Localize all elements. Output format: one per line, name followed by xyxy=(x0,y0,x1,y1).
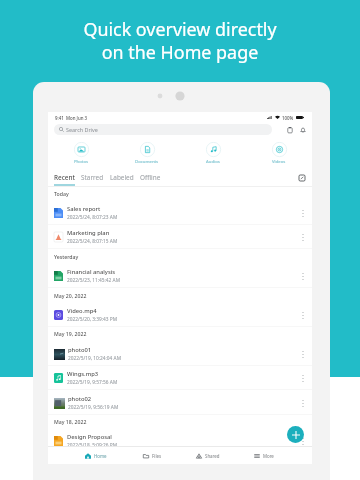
button[interactable]: Videos xyxy=(246,136,312,164)
staticText: Marketing plan xyxy=(67,229,110,237)
button[interactable]: Photos xyxy=(48,136,114,164)
staticText: 2022/5/19, 9:57:56 AM xyxy=(67,379,118,386)
staticText: Files xyxy=(152,453,162,459)
staticText: Yesterday xyxy=(54,253,79,260)
button[interactable]: Home xyxy=(68,447,124,464)
button[interactable]: Sales report xyxy=(48,201,312,225)
staticText: Photos xyxy=(74,158,89,164)
staticText: Wings.mp3 xyxy=(67,370,99,378)
staticText: Labeled xyxy=(110,173,134,182)
button[interactable]: More options xyxy=(297,270,309,282)
button[interactable]: Notifications xyxy=(296,123,309,136)
staticText: Quick overview directly on the Home page xyxy=(83,17,277,64)
button[interactable]: More options xyxy=(297,348,309,360)
button[interactable]: Select xyxy=(296,172,307,183)
staticText: Videos xyxy=(272,158,286,164)
staticText: 100% xyxy=(282,115,294,121)
button[interactable]: Offline xyxy=(137,173,164,186)
staticText: 2022/5/23, 11:45:42 AM xyxy=(67,277,121,284)
button[interactable]: More options xyxy=(297,435,309,447)
button[interactable]: Video.mp4 xyxy=(48,303,312,327)
staticText: May 20, 2022 xyxy=(54,292,87,299)
button[interactable]: Files xyxy=(124,447,180,464)
staticText: Documents xyxy=(135,158,159,164)
staticText: 2022/5/24, 8:07:15 AM xyxy=(67,238,118,245)
button[interactable]: Scan document xyxy=(283,123,296,136)
button[interactable]: More options xyxy=(297,231,309,243)
button[interactable]: Starred xyxy=(78,173,107,186)
button[interactable]: photo02 xyxy=(48,391,312,415)
staticText: 2022/5/24, 8:07:23 AM xyxy=(67,214,118,221)
staticText: 2022/5/20, 3:39:43 PM xyxy=(67,316,118,323)
button[interactable]: Design Proposal xyxy=(48,429,312,453)
staticText: Design Proposal xyxy=(67,433,112,441)
staticText: Shared xyxy=(205,453,220,459)
staticText: 2022/5/19, 10:24:04 AM xyxy=(68,355,122,362)
button[interactable]: More xyxy=(236,447,292,464)
staticText: Starred xyxy=(81,173,104,182)
button[interactable]: Documents xyxy=(114,136,180,164)
staticText: May 19, 2022 xyxy=(54,330,87,337)
button[interactable]: photo01 xyxy=(48,342,312,366)
staticText: Recent xyxy=(54,173,75,182)
staticText: photo01 xyxy=(68,346,92,354)
button[interactable]: Recent xyxy=(51,173,78,186)
staticText: 2022/5/19, 9:56:19 AM xyxy=(68,404,119,411)
staticText: 9:41 Mon Jun 3 xyxy=(55,115,88,121)
staticText: Audios xyxy=(206,158,220,164)
button[interactable]: Marketing plan xyxy=(48,225,312,249)
staticText: photo02 xyxy=(68,395,92,403)
button[interactable]: Financial analysis xyxy=(48,264,312,288)
button[interactable]: Create new xyxy=(287,426,304,443)
staticText: Today xyxy=(54,190,69,197)
button[interactable]: Audios xyxy=(180,136,246,164)
button[interactable]: More options xyxy=(297,372,309,384)
staticText: Financial analysis xyxy=(67,268,116,276)
button[interactable]: Wings.mp3 xyxy=(48,366,312,390)
staticText: More xyxy=(263,453,274,459)
staticText: Search Drive xyxy=(66,126,98,133)
staticText: Home xyxy=(94,453,107,459)
button[interactable]: More options xyxy=(297,309,309,321)
button[interactable]: Labeled xyxy=(107,173,137,186)
staticText: Video.mp4 xyxy=(67,307,97,315)
staticText: Offline xyxy=(140,173,161,182)
button[interactable]: Shared xyxy=(180,447,236,464)
staticText: May 18, 2022 xyxy=(54,418,87,425)
staticText: Sales report xyxy=(67,205,101,213)
button[interactable]: More options xyxy=(297,207,309,219)
button[interactable]: More options xyxy=(297,397,309,409)
staticText: 2022/5/18, 5:09:26 PM xyxy=(67,442,118,449)
button[interactable]: Search Drive xyxy=(54,124,272,135)
